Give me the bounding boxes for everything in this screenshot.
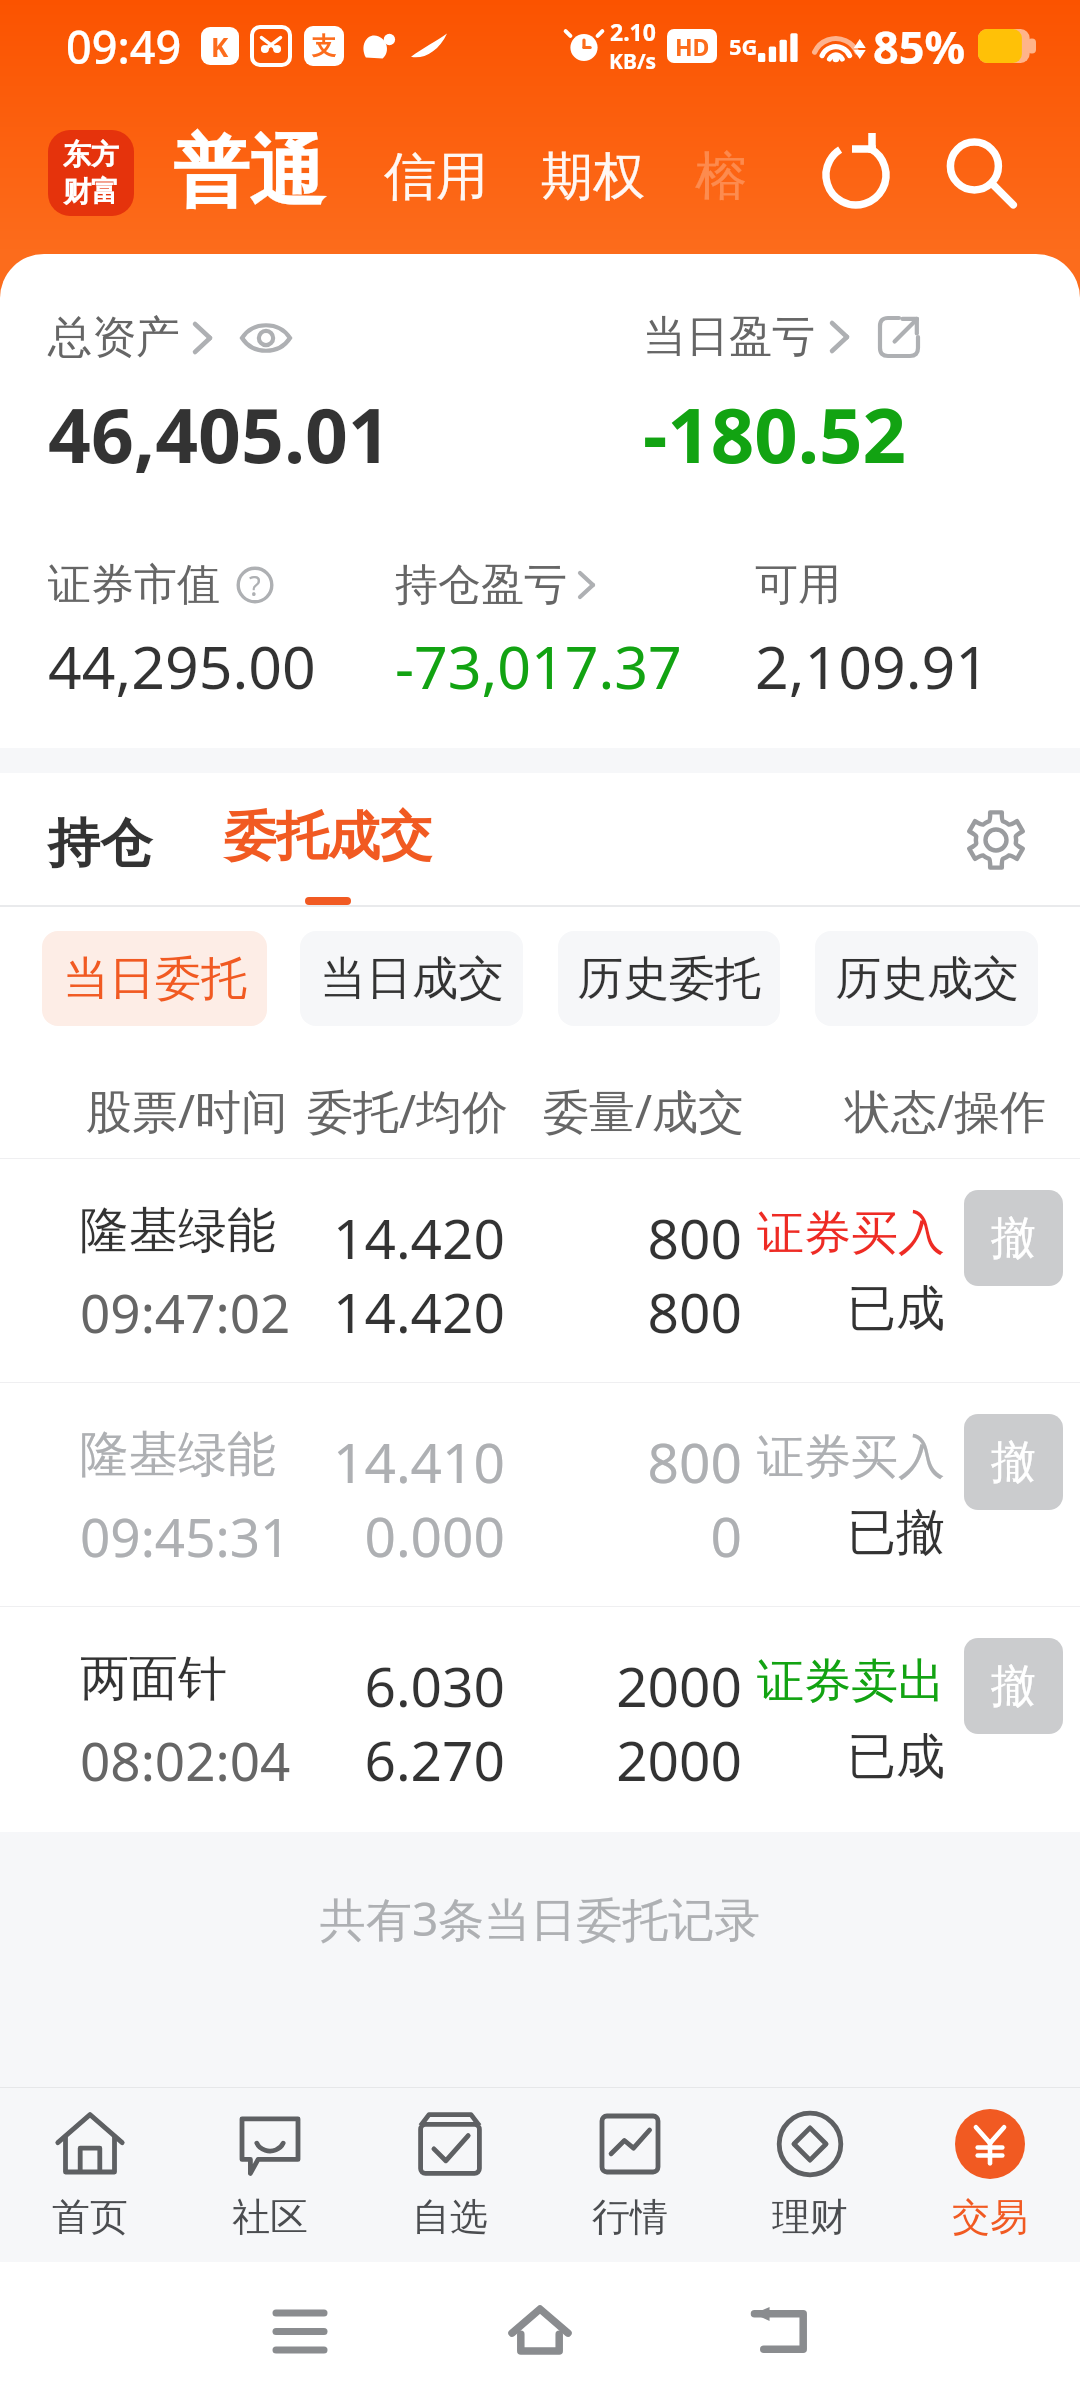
staticText: 委托/均价: [307, 1079, 543, 1142]
staticText: 信用: [384, 144, 488, 210]
button[interactable]: 总资产: [48, 310, 292, 365]
button[interactable]: 交易: [900, 2088, 1080, 2262]
staticText: 44,295.00: [48, 626, 316, 706]
staticText: -73,017.37: [395, 626, 682, 706]
staticText: ?: [249, 567, 261, 604]
staticText: -180.52: [643, 382, 907, 486]
staticText: 股票/时间: [86, 1079, 307, 1142]
staticText: 首页: [52, 2193, 128, 2241]
staticText: 800: [520, 1274, 742, 1349]
button[interactable]: 两面针: [0, 1607, 1080, 1830]
staticText: 持仓: [48, 811, 152, 877]
staticText: 14.420: [180, 1200, 505, 1275]
staticText: 85%: [873, 16, 966, 77]
staticText: 撤: [991, 1658, 1036, 1715]
staticText: 800: [520, 1200, 742, 1275]
staticText: 状态/操作: [845, 1079, 1047, 1142]
button[interactable]: 理财: [720, 2088, 900, 2262]
staticText: 财富: [63, 174, 119, 209]
staticText: 持仓盈亏: [395, 558, 567, 612]
staticText: 已成: [735, 1726, 945, 1788]
button[interactable]: Home: [495, 2285, 585, 2375]
staticText: 历史委托: [577, 950, 761, 1008]
staticText: 已撤: [735, 1502, 945, 1564]
staticText: 14.420: [180, 1274, 505, 1349]
button[interactable]: 信用: [384, 144, 488, 210]
staticText: 6.030: [180, 1648, 505, 1723]
button[interactable]: Back: [735, 2285, 825, 2375]
staticText: 2000: [520, 1648, 742, 1723]
staticText: 0.000: [180, 1498, 505, 1573]
staticText: 证券卖出: [735, 1652, 945, 1711]
staticText: 委托成交: [224, 804, 432, 870]
staticText: 09:49: [66, 16, 182, 77]
staticText: 2.10: [610, 16, 656, 47]
button[interactable]: 当日盈亏: [643, 310, 921, 364]
staticText: 2,109.91: [755, 626, 990, 706]
staticText: 08:02:04: [80, 1724, 291, 1796]
staticText: 当日成交: [320, 950, 504, 1008]
button[interactable]: 撤: [964, 1190, 1063, 1286]
staticText: K: [211, 29, 229, 64]
staticText: 2000: [520, 1722, 742, 1797]
button[interactable]: 隆基绿能: [0, 1159, 1080, 1382]
button[interactable]: 社区: [180, 2088, 360, 2262]
staticText: 09:45:31: [80, 1500, 291, 1572]
staticText: 隆基绿能: [80, 1424, 276, 1486]
button[interactable]: 撤: [964, 1638, 1063, 1734]
button[interactable]: 首页: [0, 2088, 180, 2262]
staticText: 当日委托: [63, 950, 247, 1008]
staticText: 历史成交: [835, 950, 1019, 1008]
button[interactable]: 持仓盈亏: [395, 558, 597, 612]
button[interactable]: 持仓: [48, 811, 152, 877]
staticText: 证券买入: [735, 1204, 945, 1263]
staticText: 期权: [541, 144, 645, 210]
staticText: 理财: [772, 2193, 848, 2241]
staticText: 两面针: [80, 1648, 227, 1710]
staticText: 当日盈亏: [643, 310, 815, 364]
staticText: KB/s: [609, 47, 657, 76]
button[interactable]: 撤: [964, 1414, 1063, 1510]
staticText: 共有3条当日委托记录: [320, 1887, 761, 1950]
staticText: 撤: [991, 1434, 1036, 1491]
staticText: 5G: [729, 31, 758, 61]
button[interactable]: 历史成交: [815, 931, 1038, 1026]
staticText: 可用: [755, 558, 841, 612]
button[interactable]: 自选: [360, 2088, 540, 2262]
button[interactable]: 期权: [541, 144, 645, 210]
staticText: 东方: [63, 137, 119, 172]
button[interactable]: 委托成交: [224, 804, 432, 905]
button[interactable]: Refresh: [812, 128, 902, 218]
staticText: 证券市值: [48, 558, 220, 612]
staticText: 14.410: [180, 1424, 505, 1499]
staticText: HD: [675, 31, 710, 62]
staticText: 委量/成交: [543, 1079, 845, 1142]
button[interactable]: 当日成交: [300, 931, 523, 1026]
staticText: 6.270: [180, 1722, 505, 1797]
staticText: 已成: [735, 1278, 945, 1340]
button[interactable]: Recents: [255, 2285, 345, 2375]
staticText: 隆基绿能: [80, 1200, 276, 1262]
button[interactable]: 当日委托: [42, 931, 267, 1026]
button[interactable]: Search: [935, 128, 1025, 218]
staticText: 支: [312, 31, 336, 61]
staticText: 行情: [592, 2193, 668, 2241]
staticText: 普通: [173, 125, 325, 221]
button[interactable]: 历史委托: [558, 931, 780, 1026]
staticText: 09:47:02: [80, 1276, 291, 1348]
staticText: 46,405.01: [48, 383, 391, 485]
staticText: 撤: [991, 1210, 1036, 1267]
staticText: 总资产: [48, 310, 180, 365]
staticText: 证券买入: [735, 1428, 945, 1487]
button[interactable]: Settings: [956, 800, 1036, 880]
button[interactable]: 行情: [540, 2088, 720, 2262]
button[interactable]: 普通: [173, 125, 325, 221]
staticText: 社区: [232, 2193, 308, 2241]
button[interactable]: 东方: [48, 130, 134, 216]
staticText: 自选: [412, 2193, 488, 2241]
staticText: 榕: [695, 144, 747, 210]
staticText: 0: [520, 1498, 742, 1573]
staticText: 800: [520, 1424, 742, 1499]
staticText: 交易: [952, 2193, 1028, 2241]
button[interactable]: 隆基绿能: [0, 1383, 1080, 1606]
